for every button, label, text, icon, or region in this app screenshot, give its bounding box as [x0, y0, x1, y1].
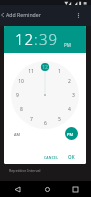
staticText: PM — [64, 42, 71, 48]
staticText: 11 — [28, 68, 34, 75]
button[interactable]: 10 — [17, 77, 25, 85]
staticText: 8 — [20, 106, 23, 113]
button[interactable]: 12 — [41, 63, 49, 71]
button[interactable]: CANCEL — [42, 153, 61, 162]
button[interactable]: 2 — [65, 77, 73, 85]
staticText: 9 — [16, 92, 19, 99]
button[interactable]: Recents — [69, 183, 81, 195]
button[interactable]: Home — [41, 183, 53, 195]
staticText: 5 — [58, 116, 61, 123]
button[interactable]: 9 — [13, 91, 21, 99]
button[interactable]: More options — [74, 8, 83, 22]
staticText: PM — [67, 132, 74, 137]
button[interactable]: Back — [11, 183, 23, 195]
staticText: Add Reminder — [6, 11, 41, 18]
button[interactable]: 5 — [55, 115, 63, 123]
button[interactable]: 7 — [27, 115, 35, 123]
staticText: Repetitive Interval — [9, 168, 41, 173]
button[interactable]: 3 — [69, 91, 77, 99]
staticText: 2 — [68, 78, 71, 85]
staticText: 1 — [58, 68, 61, 75]
button[interactable]: 39 — [39, 29, 58, 49]
button[interactable]: 1 — [55, 67, 63, 75]
staticText: CANCEL — [44, 155, 59, 160]
staticText: 12 — [42, 64, 48, 71]
button[interactable]: 8 — [17, 105, 25, 113]
staticText: : — [34, 29, 39, 49]
staticText: OK — [68, 154, 75, 160]
staticText: 4 — [68, 106, 71, 113]
button[interactable]: PM — [65, 127, 78, 140]
button[interactable]: Back — [0, 8, 5, 22]
button[interactable]: 4 — [65, 105, 73, 113]
staticText: 12 — [15, 29, 34, 49]
button[interactable]: 11 — [27, 67, 35, 75]
staticText: 39 — [39, 29, 58, 49]
button[interactable]: OK — [66, 152, 77, 162]
button[interactable]: 6 — [41, 119, 49, 127]
staticText: AM — [14, 132, 20, 137]
staticText: 3 — [72, 92, 75, 99]
button[interactable]: AM — [11, 127, 27, 141]
button[interactable]: 12 — [15, 29, 34, 49]
button[interactable]: PM — [64, 42, 71, 48]
staticText: 10 — [18, 78, 24, 85]
staticText: 6 — [44, 120, 47, 127]
staticText: 7 — [30, 116, 33, 123]
